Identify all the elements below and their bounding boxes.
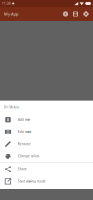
button[interactable]: Settings: [78, 11, 89, 17]
button[interactable]: Share: [0, 163, 93, 175]
button[interactable]: Save: [68, 11, 78, 17]
staticText: Change colors: [18, 154, 39, 158]
button[interactable]: Add view: [0, 114, 93, 126]
staticText: Rename: [18, 142, 31, 146]
button[interactable]: Rename: [0, 138, 93, 150]
staticText: My App: [4, 11, 18, 17]
button[interactable]: Start viewing mode: [0, 175, 93, 187]
button[interactable]: Edit views: [0, 126, 93, 138]
staticText: Share: [18, 167, 27, 171]
button[interactable]: Change colors: [0, 150, 93, 162]
staticText: 11:30: [2, 1, 11, 5]
staticText: Edit views: [18, 130, 31, 134]
staticText: Edit My App: [3, 105, 19, 109]
staticText: Add view: [18, 118, 30, 121]
button[interactable]: Help: [62, 11, 68, 17]
staticText: Start viewing mode: [18, 179, 46, 183]
